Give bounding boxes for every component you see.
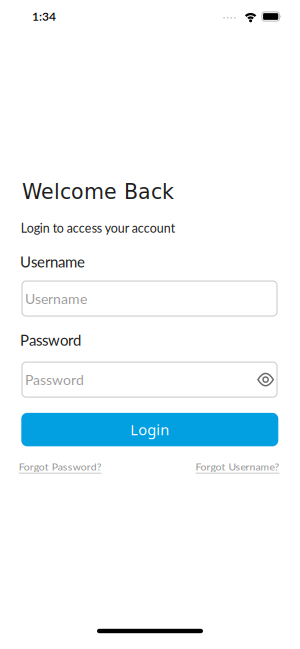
- button[interactable]: Forgot Password?: [19, 460, 102, 473]
- staticText: Forgot Password?: [19, 460, 102, 473]
- button[interactable]: Forgot Username?: [195, 460, 279, 473]
- staticText: Password: [20, 331, 81, 349]
- button[interactable]: Show password: [257, 373, 274, 386]
- staticText: Username: [20, 253, 85, 271]
- staticText: Login to access your account: [21, 221, 175, 235]
- staticText: Password: [25, 371, 84, 388]
- button[interactable]: Username: [22, 281, 277, 316]
- staticText: Username: [25, 290, 87, 307]
- staticText: 1:34: [32, 9, 56, 23]
- button[interactable]: Login: [21, 413, 278, 446]
- staticText: Login: [130, 420, 169, 439]
- staticText: Welcome Back: [22, 180, 174, 204]
- staticText: Forgot Username?: [195, 460, 279, 473]
- button[interactable]: Password: [22, 362, 277, 397]
